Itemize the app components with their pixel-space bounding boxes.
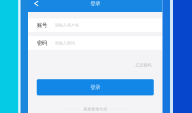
button[interactable]: 忘记密码 <box>135 61 162 70</box>
staticText: 账号 <box>37 22 47 29</box>
staticText: 忘记密码 <box>135 63 151 68</box>
staticText: 请输入用户名 <box>55 23 79 28</box>
staticText: 密码 <box>37 40 47 46</box>
button[interactable]: 登录 <box>37 79 154 95</box>
staticText: 请输入密码 <box>55 41 75 45</box>
staticText: 登录 <box>90 0 100 7</box>
button[interactable]: Back <box>28 0 45 7</box>
staticText: 其他登录方式 <box>83 107 107 111</box>
staticText: 登录 <box>90 84 100 91</box>
